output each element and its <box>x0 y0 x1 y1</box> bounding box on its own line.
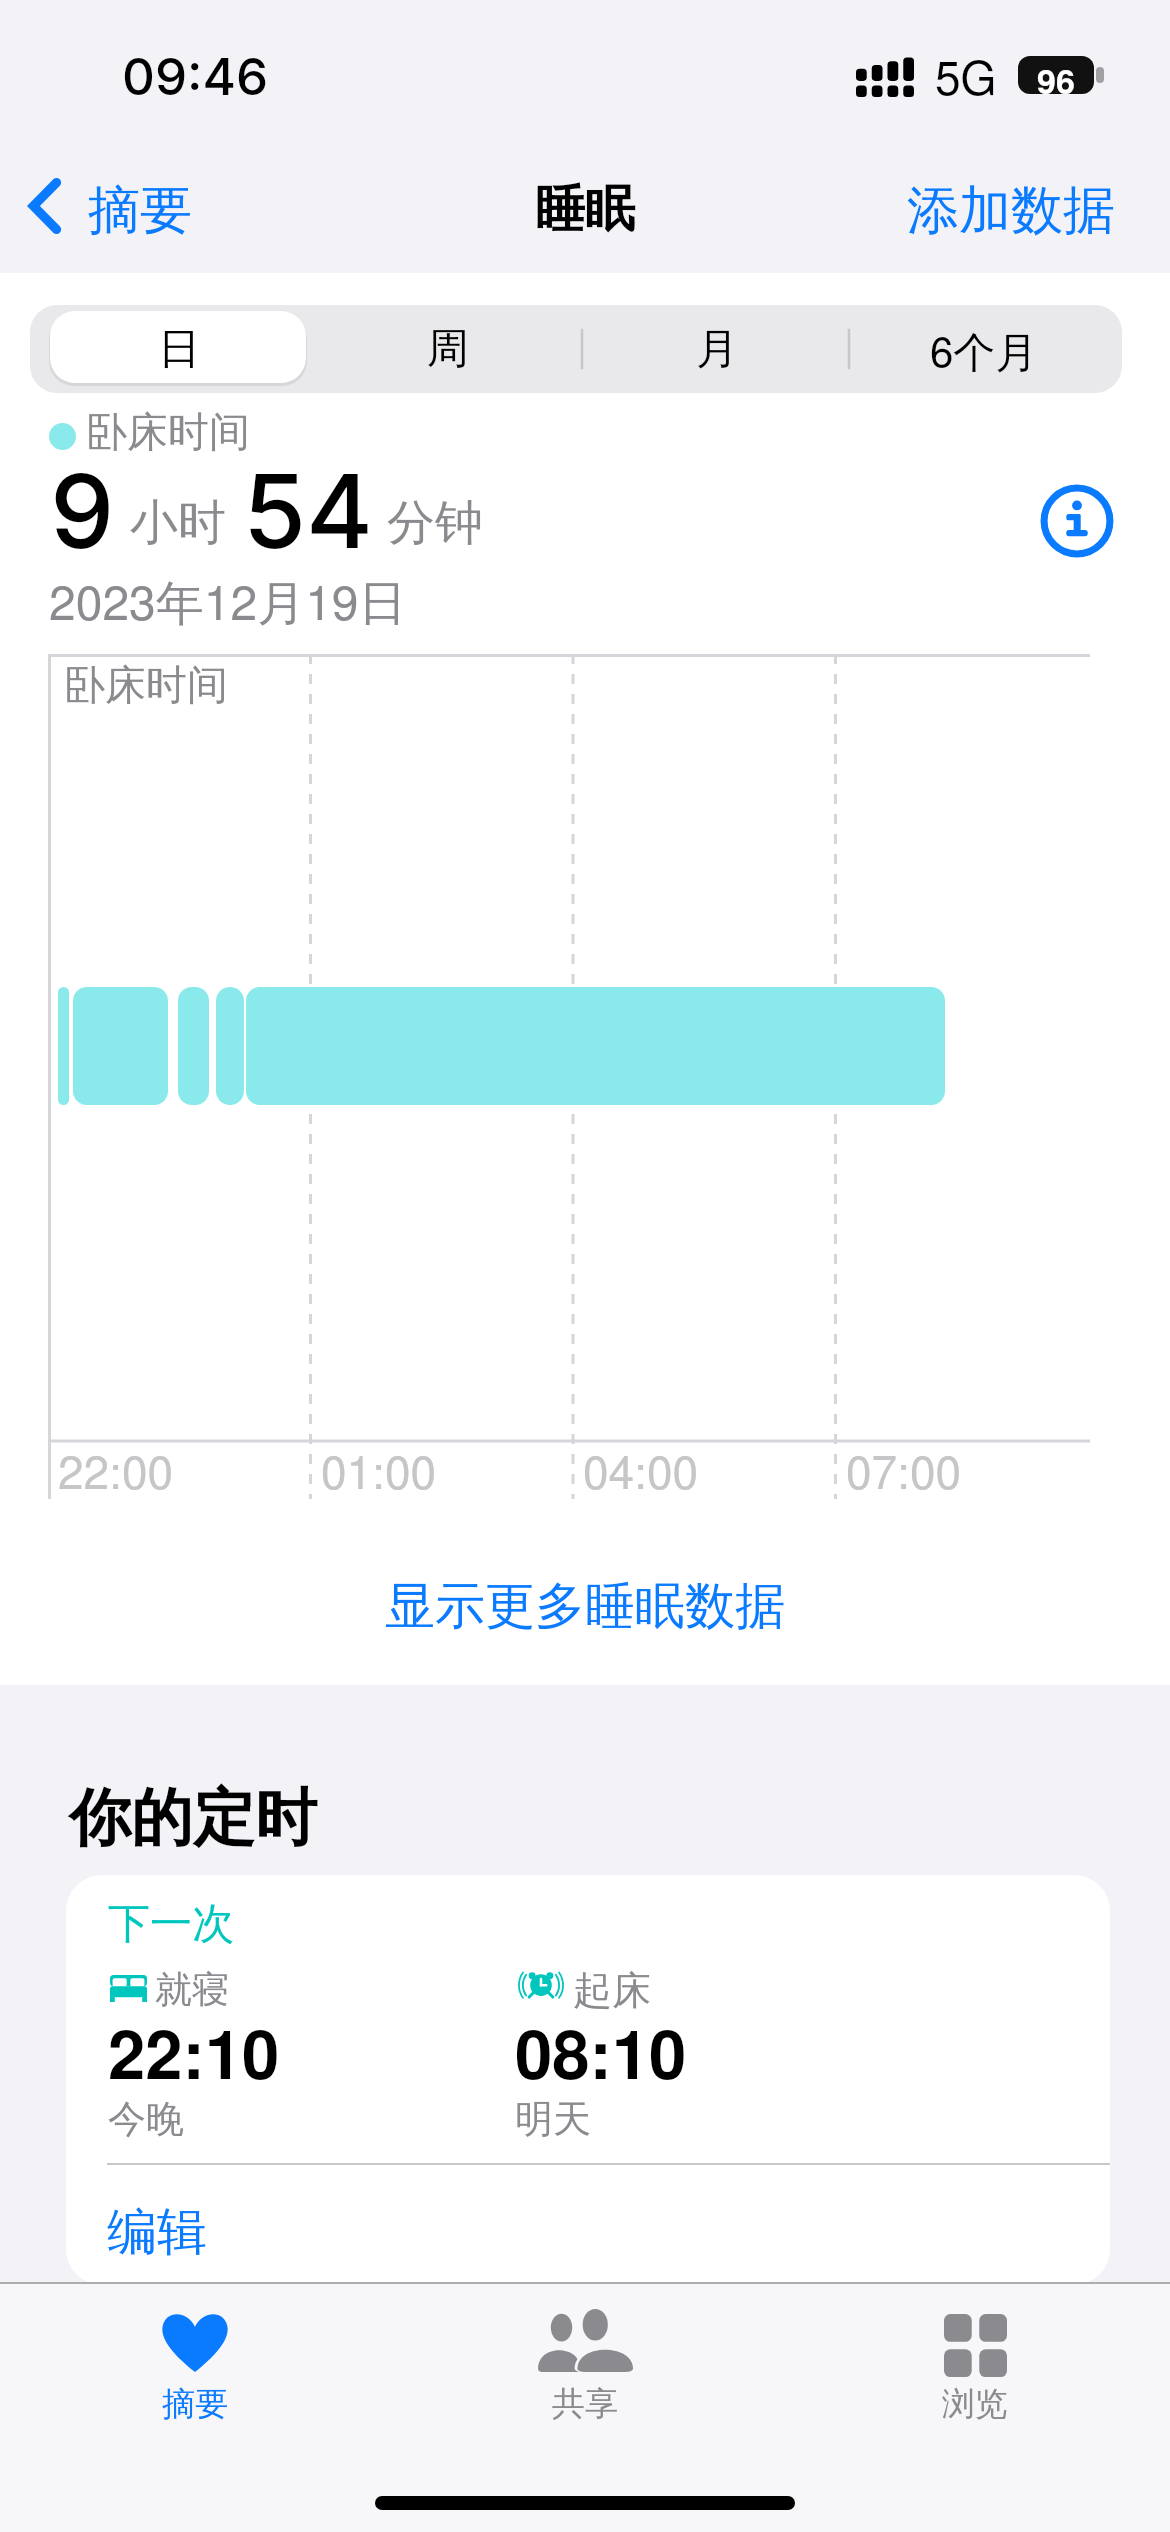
staticText: 摘要 <box>162 2383 228 2425</box>
staticText: 22:00 <box>58 1436 174 1502</box>
staticText: 明天 <box>515 2095 591 2143</box>
staticText: 显示更多睡眠数据 <box>385 1575 785 1638</box>
button[interactable]: 周 <box>313 305 583 393</box>
button[interactable]: 显示更多睡眠数据 <box>0 1551 1170 1661</box>
staticText: 摘要 <box>88 178 192 244</box>
staticText: 周 <box>427 323 469 376</box>
staticText: 睡眠 <box>535 178 635 241</box>
button[interactable]: 日 <box>44 305 314 393</box>
button[interactable]: 6个月 <box>849 305 1119 393</box>
staticText: 96 <box>1037 56 1075 94</box>
staticText: 今晚 <box>108 2095 184 2143</box>
staticText: 9 <box>50 449 115 572</box>
staticText: 6个月 <box>930 319 1038 380</box>
button[interactable]: Info <box>1040 484 1114 558</box>
staticText: 04:00 <box>583 1436 699 1502</box>
button[interactable]: 摘要 <box>14 160 214 252</box>
staticText: 分钟 <box>387 493 483 553</box>
button[interactable]: 浏览 <box>780 2284 1170 2454</box>
button[interactable]: 摘要 <box>0 2284 390 2454</box>
staticText: 2023年12月19日 <box>49 565 407 634</box>
staticText: 共享 <box>552 2383 618 2425</box>
staticText: 卧床时间 <box>86 407 250 459</box>
staticText: 编辑 <box>107 2201 207 2264</box>
staticText: 09:46 <box>122 46 269 108</box>
staticText: 就寝 <box>155 1966 229 2013</box>
button[interactable]: 月 <box>582 305 852 393</box>
staticText: 添加数据 <box>907 178 1115 244</box>
staticText: 月 <box>696 323 738 376</box>
staticText: 08:10 <box>515 2004 687 2100</box>
staticText: 01:00 <box>321 1436 437 1502</box>
staticText: 07:00 <box>846 1436 962 1502</box>
staticText: 卧床时间 <box>64 660 228 712</box>
staticText: 22:10 <box>108 2004 280 2100</box>
staticText: 5G <box>935 42 997 108</box>
button[interactable]: 添加数据 <box>962 160 1170 226</box>
staticText: 下一次 <box>108 1898 234 1951</box>
staticText: 小时 <box>130 493 226 553</box>
button[interactable]: 共享 <box>390 2284 780 2454</box>
staticText: 54 <box>243 449 373 572</box>
staticText: 你的定时 <box>69 1779 317 1857</box>
button[interactable]: 编辑 <box>66 2165 1110 2283</box>
staticText: 浏览 <box>942 2383 1008 2425</box>
staticText: 日 <box>158 323 200 376</box>
staticText: 起床 <box>573 1966 651 2015</box>
